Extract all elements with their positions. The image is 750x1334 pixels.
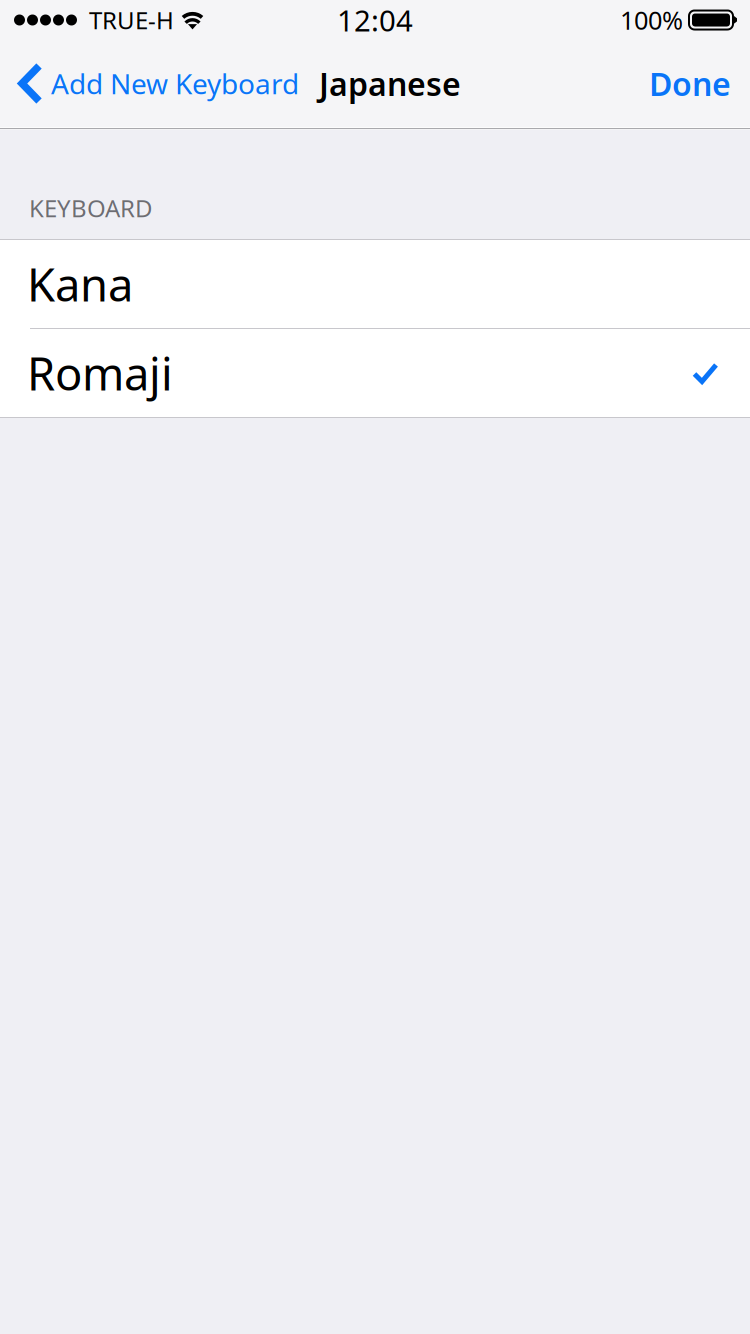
- staticText: Japanese: [319, 62, 461, 105]
- button[interactable]: Romaji: [0, 329, 750, 417]
- staticText: 12:04: [337, 0, 413, 39]
- staticText: Romaji: [27, 343, 173, 403]
- staticText: Done: [649, 62, 731, 105]
- button[interactable]: Back to Add New Keyboard: [0, 62, 299, 104]
- button[interactable]: Done: [649, 62, 750, 105]
- staticText: Add New Keyboard: [51, 65, 299, 102]
- button[interactable]: Kana: [0, 240, 750, 328]
- staticText: KEYBOARD: [29, 192, 153, 224]
- staticText: Kana: [27, 254, 133, 314]
- staticText: TRUE-H: [89, 4, 174, 36]
- staticText: 100%: [620, 3, 683, 37]
